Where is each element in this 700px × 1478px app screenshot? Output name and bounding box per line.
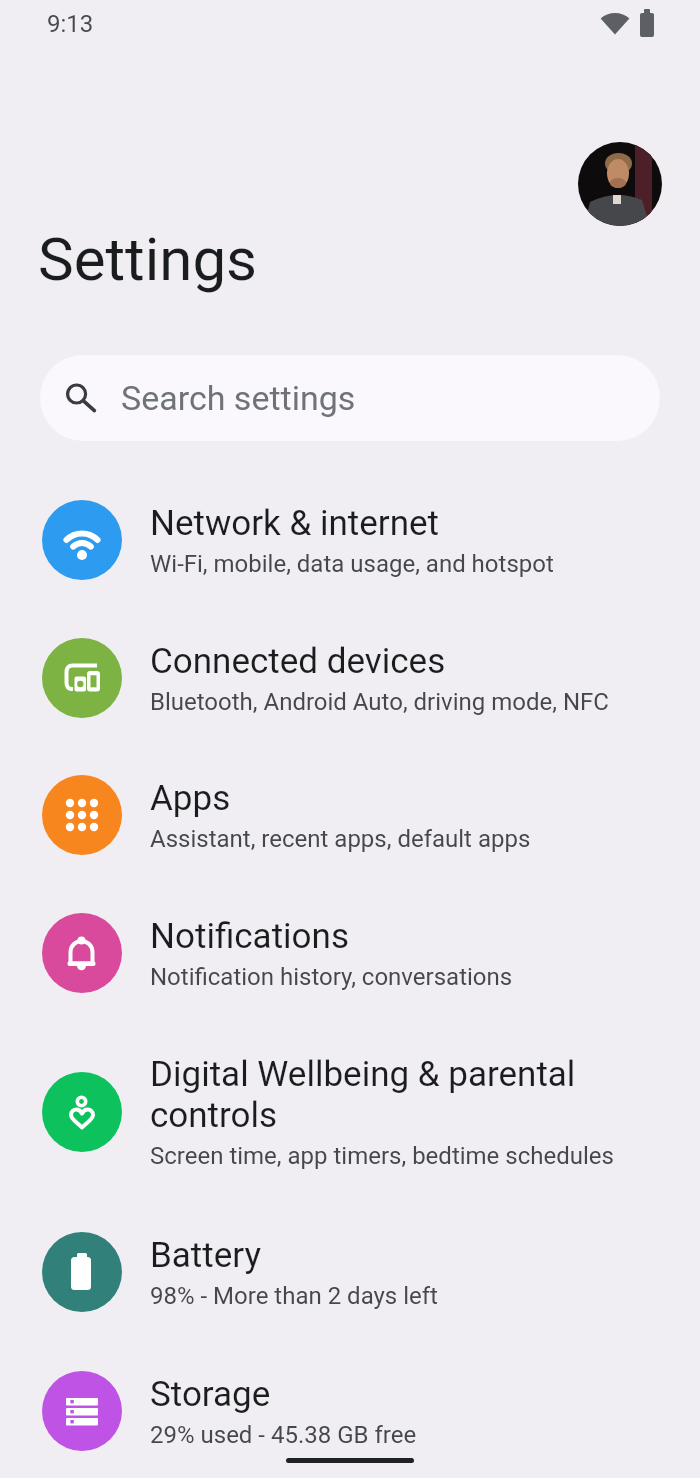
staticText: Screen time, app timers, bedtime schedul… — [150, 1142, 614, 1170]
button[interactable]: Storage — [0, 1342, 700, 1478]
staticText: Wi-Fi, mobile, data usage, and hotspot — [150, 550, 554, 578]
staticText: Notification history, conversations — [150, 963, 513, 991]
button[interactable]: Search settings — [40, 355, 660, 441]
button[interactable]: Network & internet — [0, 471, 700, 609]
staticText: Connected devices — [150, 641, 446, 682]
staticText: 29% used - 45.38 GB free — [150, 1421, 417, 1449]
staticText: Storage — [150, 1374, 271, 1415]
button[interactable]: Digital Wellbeing & parental controls — [0, 1022, 700, 1202]
button[interactable]: Notifications — [0, 884, 700, 1022]
button[interactable]: Apps — [0, 746, 700, 884]
staticText: Settings — [38, 224, 258, 294]
button[interactable]: Connected devices — [0, 609, 700, 747]
staticText: Apps — [150, 778, 231, 819]
staticText: Notifications — [150, 916, 349, 957]
button[interactable] — [578, 142, 662, 226]
staticText: Assistant, recent apps, default apps — [150, 825, 531, 853]
staticText: Search settings — [121, 378, 356, 418]
staticText: Bluetooth, Android Auto, driving mode, N… — [150, 688, 609, 716]
staticText: Battery — [150, 1235, 262, 1276]
staticText: Digital Wellbeing & parental controls — [150, 1054, 576, 1136]
button[interactable]: Battery — [0, 1202, 700, 1342]
staticText: 98% - More than 2 days left — [150, 1282, 438, 1310]
staticText: 9:13 — [47, 10, 94, 38]
staticText: Network & internet — [150, 503, 440, 544]
